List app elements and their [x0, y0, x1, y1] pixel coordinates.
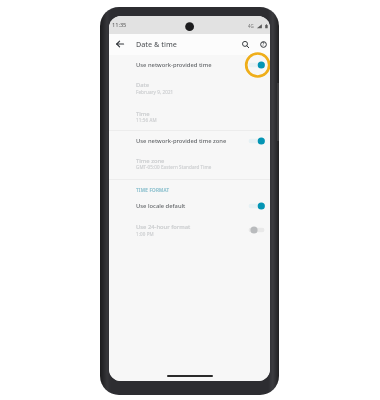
button[interactable]: Use locale default: [109, 195, 270, 217]
staticText: Use network-provided time zone: [136, 137, 227, 145]
button[interactable]: Navigate up: [112, 36, 128, 52]
staticText: 4G: [248, 23, 254, 29]
staticText: Time: [136, 110, 150, 118]
staticText: Time zone: [136, 157, 165, 165]
staticText: GMT-05:00 Eastern Standard Time: [136, 164, 212, 170]
staticText: 11:56 AM: [136, 117, 157, 123]
button[interactable]: Time: [109, 104, 270, 130]
button[interactable]: TIME FORMAT: [136, 187, 170, 193]
staticText: ?: [262, 41, 265, 48]
staticText: Date & time: [136, 39, 177, 49]
button[interactable]: Use network-provided time zone: [109, 130, 270, 152]
staticText: Use network-provided time: [136, 61, 212, 69]
button[interactable]: Use 24-hour format toggle: [109, 222, 270, 238]
staticText: Use 24-hour format: [136, 223, 191, 231]
button[interactable]: Use network-provided time: [109, 54, 270, 76]
staticText: February 9, 2021: [136, 89, 174, 95]
staticText: Use locale default: [136, 202, 186, 210]
button[interactable]: Help: [255, 36, 270, 52]
staticText: TIME FORMAT: [136, 187, 170, 193]
button[interactable]: Date: [109, 75, 270, 102]
button[interactable]: Search: [237, 36, 253, 52]
staticText: Date: [136, 81, 150, 89]
staticText: 11:35: [112, 21, 127, 29]
button[interactable]: Time zone: [109, 151, 270, 177]
button[interactable]: Use 24-hour format: [109, 217, 270, 244]
staticText: 1:00 PM: [136, 231, 154, 237]
